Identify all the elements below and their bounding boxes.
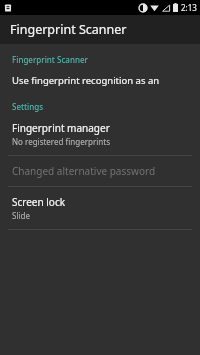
- staticText: Settings: [12, 101, 44, 112]
- staticText: Fingerprint manager: [12, 121, 110, 135]
- button[interactable]: Fingerprint manager: [0, 113, 200, 155]
- staticText: Slide: [12, 210, 30, 221]
- staticText: Changed alternative password: [12, 164, 156, 178]
- button[interactable]: Screen lock: [0, 187, 200, 229]
- button[interactable]: Use fingerprint recognition as an altern…: [0, 66, 200, 97]
- staticText: Fingerprint Scanner: [12, 54, 88, 65]
- staticText: Use fingerprint recognition as an altern…: [12, 74, 188, 87]
- staticText: Fingerprint Scanner: [10, 21, 127, 38]
- staticText: No registered fingerprints: [12, 136, 110, 147]
- button[interactable]: Changed alternative password: [0, 156, 200, 186]
- staticText: 2:13: [181, 2, 197, 13]
- staticText: Screen lock: [12, 195, 66, 209]
